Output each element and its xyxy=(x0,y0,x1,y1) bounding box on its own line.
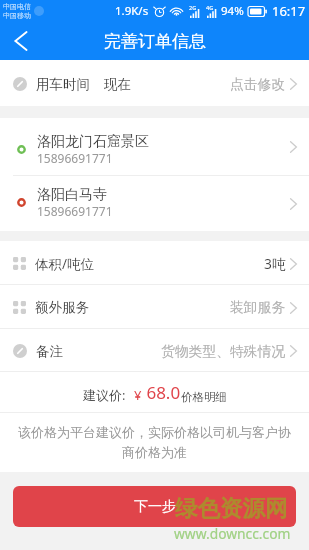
staticText: 4G xyxy=(206,4,214,11)
button[interactable]: 体积/吨位 xyxy=(0,241,309,285)
staticText: 中国电信 xyxy=(3,2,31,11)
staticText: 16:17 xyxy=(272,2,306,20)
staticText: 1.9K/s xyxy=(115,3,149,19)
button[interactable]: 洛阳白马寺 xyxy=(0,176,309,231)
staticText: 价格明细 xyxy=(181,390,227,404)
button[interactable]: 洛阳龙门石窟景区 xyxy=(0,118,309,176)
staticText: 68.0 xyxy=(142,381,181,404)
staticText: 15896691771 xyxy=(37,150,113,166)
button[interactable]: 用车时间 现在 xyxy=(0,60,309,106)
staticText: 94% xyxy=(221,3,244,19)
staticText: 2G xyxy=(189,4,197,11)
staticText: 该价格为平台建议价，实际价格以司机与客户协商价格为准 xyxy=(15,424,294,461)
staticText: 中国移动 xyxy=(3,11,31,20)
button[interactable]: 备注 xyxy=(0,329,309,372)
button[interactable]: 额外服务 xyxy=(0,285,309,329)
staticText: 备注 xyxy=(36,343,63,360)
button[interactable]: 下一步 xyxy=(13,486,296,527)
staticText: www.downcc.com xyxy=(174,524,291,543)
staticText: 额外服务 xyxy=(35,299,89,316)
staticText: 体积/吨位 xyxy=(35,255,95,273)
staticText: 装卸服务 xyxy=(230,299,286,316)
staticText: 货物类型、特殊情况 xyxy=(161,343,286,360)
staticText: 建议价: xyxy=(83,386,126,404)
staticText: 洛阳白马寺 xyxy=(37,186,107,204)
staticText: 下一步 xyxy=(134,498,176,516)
staticText: 15896691771 xyxy=(37,203,113,219)
staticText: 绿色资源网 xyxy=(175,494,288,522)
staticText: ¥ xyxy=(134,386,142,404)
staticText: 完善订单信息 xyxy=(104,31,206,52)
staticText: 3吨 xyxy=(264,254,286,273)
staticText: 用车时间 现在 xyxy=(36,75,132,93)
staticText: 洛阳龙门石窟景区 xyxy=(37,133,149,151)
button[interactable]: Back xyxy=(0,22,38,60)
staticText: 点击修改 xyxy=(230,76,286,93)
